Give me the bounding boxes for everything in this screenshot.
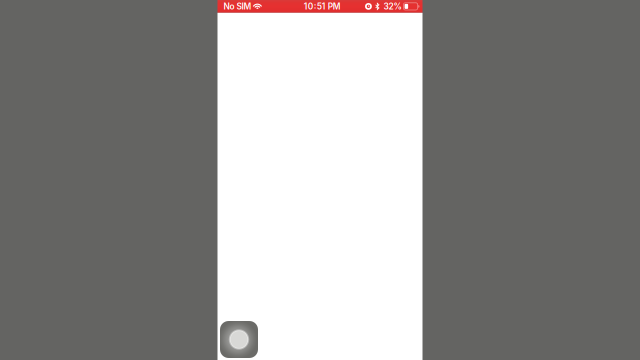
staticText: 10:51 PM bbox=[304, 1, 341, 11]
staticText: 32% bbox=[383, 1, 401, 11]
button[interactable]: AssistiveTouch bbox=[220, 321, 258, 358]
staticText: No SIM bbox=[223, 1, 251, 11]
